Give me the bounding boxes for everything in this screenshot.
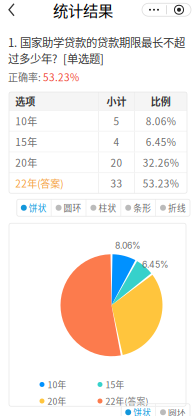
staticText: 统计结果 [53,0,113,21]
staticText: 圆环 [64,201,82,214]
staticText: 53.23% [143,176,179,190]
staticText: 8.06% [146,114,176,128]
staticText: 选项 [15,94,35,108]
staticText: 10年 [47,378,66,391]
staticText: 小计 [106,94,126,108]
button[interactable]: Back [0,0,24,22]
staticText: 4 [113,134,119,149]
staticText: 10年 [15,114,37,128]
button[interactable]: 圆环 [155,404,190,416]
button[interactable]: 折线 [155,199,190,216]
staticText: 15年 [15,134,37,149]
button[interactable]: 条形 [120,199,155,216]
staticText: 圆环 [168,406,186,416]
staticText: 53.23% [43,70,79,84]
button[interactable]: 饼状 [121,404,155,416]
staticText: 8.06% [115,240,141,251]
staticText: 15年 [105,378,124,391]
staticText: 正确率: [8,70,43,84]
staticText: 20年 [15,155,37,170]
button[interactable]: 饼状 [17,199,51,216]
staticText: 33 [110,176,122,190]
staticText: 5 [113,114,119,128]
staticText: 22年(答案) [15,176,63,190]
staticText: 22年(答案) [105,395,148,407]
staticText: 条形 [133,201,151,214]
staticText: 32.26% [143,155,179,170]
staticText: 20年 [47,395,66,407]
button[interactable]: Close [167,3,191,16]
staticText: 20 [110,155,122,170]
staticText: 1. 国家助学贷款的贷款期限最长不超过多少年? [单选题] [8,34,185,67]
staticText: 饼状 [29,201,47,214]
button[interactable]: More [142,3,166,16]
staticText: 柱状 [98,201,116,214]
staticText: 6.45% [146,134,176,149]
staticText: 折线 [168,201,186,214]
staticText: 饼状 [133,406,151,416]
staticText: 6.45% [142,259,169,270]
button[interactable]: 圆环 [51,199,86,216]
button[interactable]: 柱状 [86,199,120,216]
staticText: 比例 [151,94,171,108]
